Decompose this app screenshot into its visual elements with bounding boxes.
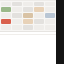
button[interactable]: Item xyxy=(45,13,55,18)
button[interactable]: Item xyxy=(1,19,11,24)
button[interactable]: Item xyxy=(1,7,11,12)
button[interactable]: Item xyxy=(23,19,33,24)
button[interactable]: Item xyxy=(23,13,33,18)
button[interactable]: Item xyxy=(34,7,44,12)
